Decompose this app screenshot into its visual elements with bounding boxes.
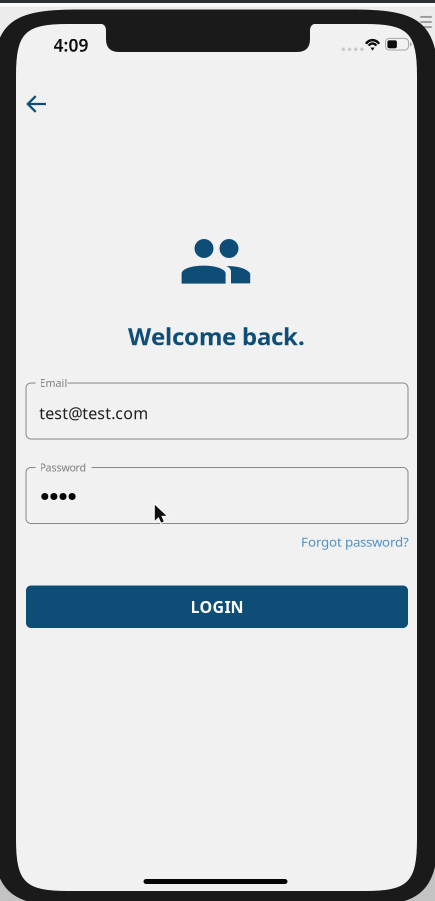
staticText: Email [40, 376, 68, 390]
button[interactable]: Menu [415, 10, 435, 34]
staticText: Forgot password? [301, 533, 409, 550]
button[interactable]: LOGIN [26, 585, 408, 628]
staticText: LOGIN [190, 596, 243, 617]
staticText: Welcome back. [128, 320, 305, 352]
staticText: test@test.com [39, 402, 148, 424]
button[interactable]: Back [16, 83, 62, 125]
staticText: Password [40, 460, 87, 475]
staticText: 4:09 [53, 33, 88, 56]
button[interactable]: Forgot password? [289, 532, 409, 550]
